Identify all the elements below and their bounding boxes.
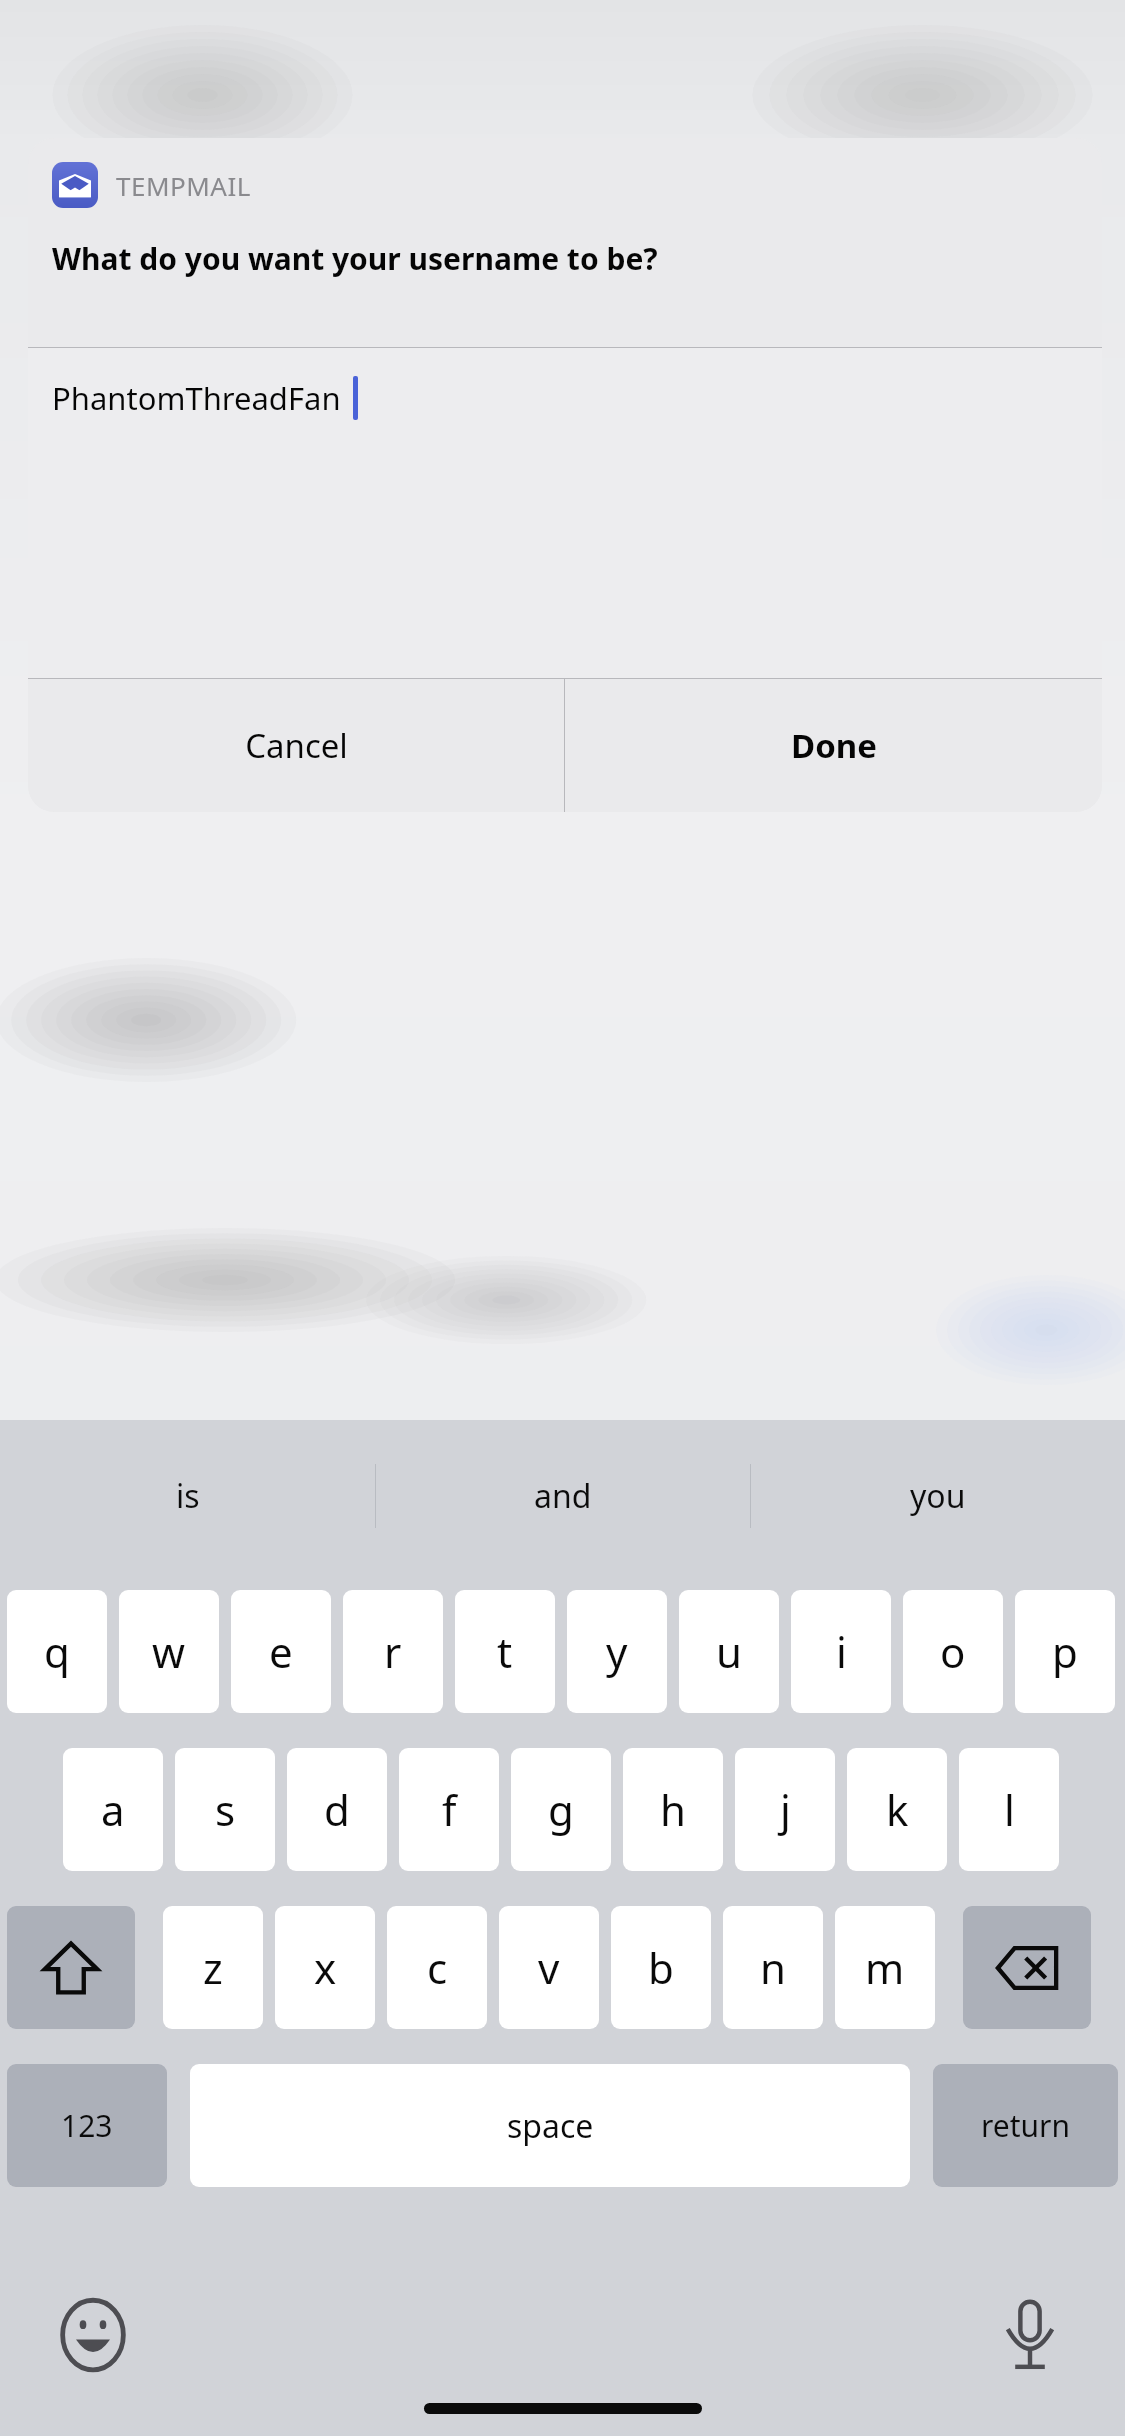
- button[interactable]: Emoji keyboard: [56, 2298, 130, 2372]
- button[interactable]: l: [959, 1748, 1059, 1871]
- staticText: What do you want your username to be?: [52, 238, 658, 279]
- button[interactable]: is: [0, 1420, 375, 1572]
- button[interactable]: m: [835, 1906, 935, 2029]
- button[interactable]: Shift: [7, 1906, 135, 2029]
- button[interactable]: c: [387, 1906, 487, 2029]
- staticText: x: [314, 1939, 337, 1996]
- button[interactable]: n: [723, 1906, 823, 2029]
- staticText: l: [1004, 1781, 1015, 1838]
- button[interactable]: Cancel: [28, 679, 564, 812]
- button[interactable]: a: [63, 1748, 163, 1871]
- button[interactable]: e: [231, 1590, 331, 1713]
- staticText: h: [660, 1781, 686, 1838]
- staticText: k: [886, 1781, 909, 1838]
- staticText: you: [910, 1474, 966, 1518]
- button[interactable]: Dictation: [993, 2298, 1067, 2372]
- button[interactable]: k: [847, 1748, 947, 1871]
- button[interactable]: i: [791, 1590, 891, 1713]
- button[interactable]: w: [119, 1590, 219, 1713]
- staticText: return: [981, 2105, 1071, 2146]
- staticText: t: [497, 1623, 513, 1680]
- button[interactable]: space: [190, 2064, 910, 2187]
- staticText: Cancel: [245, 723, 348, 768]
- staticText: y: [606, 1623, 628, 1680]
- button[interactable]: y: [567, 1590, 667, 1713]
- staticText: i: [836, 1623, 847, 1680]
- staticText: is: [176, 1474, 200, 1518]
- staticText: e: [269, 1623, 293, 1680]
- button[interactable]: v: [499, 1906, 599, 2029]
- other: TempMail app icon: [52, 162, 98, 208]
- button[interactable]: u: [679, 1590, 779, 1713]
- staticText: c: [427, 1939, 448, 1996]
- button[interactable]: g: [511, 1748, 611, 1871]
- button[interactable]: return: [933, 2064, 1118, 2187]
- button[interactable]: x: [275, 1906, 375, 2029]
- staticText: r: [384, 1623, 402, 1680]
- button[interactable]: d: [287, 1748, 387, 1871]
- staticText: Done: [791, 723, 877, 768]
- staticText: v: [538, 1939, 560, 1996]
- staticText: d: [324, 1781, 350, 1838]
- staticText: q: [44, 1623, 70, 1680]
- staticText: space: [507, 2104, 594, 2148]
- staticText: 123: [61, 2105, 113, 2146]
- button[interactable]: z: [163, 1906, 263, 2029]
- button[interactable]: Backspace: [963, 1906, 1091, 2029]
- staticText: o: [940, 1623, 966, 1680]
- staticText: PhantomThreadFan: [52, 377, 341, 419]
- staticText: w: [152, 1623, 186, 1680]
- staticText: g: [548, 1781, 574, 1838]
- staticText: a: [101, 1781, 125, 1838]
- button[interactable]: r: [343, 1590, 443, 1713]
- staticText: b: [648, 1939, 674, 1996]
- button[interactable]: 123: [7, 2064, 167, 2187]
- staticText: TEMPMAIL: [116, 168, 251, 203]
- button[interactable]: p: [1015, 1590, 1115, 1713]
- staticText: m: [865, 1939, 905, 1996]
- button[interactable]: s: [175, 1748, 275, 1871]
- button[interactable]: b: [611, 1906, 711, 2029]
- staticText: n: [760, 1939, 786, 1996]
- button[interactable]: Done: [565, 679, 1102, 812]
- button[interactable]: f: [399, 1748, 499, 1871]
- button[interactable]: q: [7, 1590, 107, 1713]
- button[interactable]: you: [751, 1420, 1125, 1572]
- staticText: p: [1052, 1623, 1078, 1680]
- staticText: and: [534, 1474, 592, 1518]
- button[interactable]: t: [455, 1590, 555, 1713]
- button[interactable]: j: [735, 1748, 835, 1871]
- staticText: u: [716, 1623, 742, 1680]
- staticText: f: [442, 1781, 457, 1838]
- staticText: z: [203, 1939, 223, 1996]
- button[interactable]: o: [903, 1590, 1003, 1713]
- staticText: j: [780, 1781, 791, 1838]
- staticText: s: [215, 1781, 236, 1838]
- button[interactable]: h: [623, 1748, 723, 1871]
- button[interactable]: and: [376, 1420, 750, 1572]
